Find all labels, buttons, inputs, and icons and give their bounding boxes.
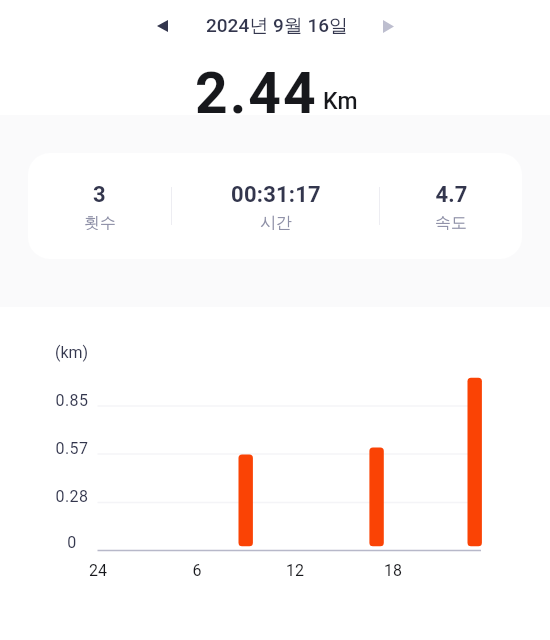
staticText: 횟수 (84, 213, 116, 233)
staticText: 24 (73, 561, 123, 580)
button[interactable]: Next day (369, 7, 407, 45)
staticText: 18 (368, 561, 418, 580)
staticText: 0.28 (22, 487, 122, 506)
staticText: 3 (93, 182, 106, 208)
button[interactable]: 00:31:17 (172, 153, 379, 259)
staticText: 0 (22, 533, 122, 552)
button[interactable]: 4.7 (380, 153, 522, 259)
staticText: 0.85 (22, 391, 122, 410)
button[interactable]: Previous day (143, 7, 181, 45)
staticText: 4.7 (435, 182, 468, 208)
staticText: 시간 (260, 213, 292, 233)
staticText: 2.44 (195, 60, 318, 127)
button[interactable]: 3 (28, 153, 522, 259)
staticText: 12 (270, 561, 320, 580)
staticText: 6 (172, 561, 222, 580)
staticText: 속도 (435, 213, 467, 233)
staticText: (km) (55, 343, 89, 362)
staticText: 2024년 9월 16일 (206, 14, 349, 38)
staticText: 0.57 (22, 439, 122, 458)
staticText: 00:31:17 (231, 182, 321, 208)
button[interactable]: 3 (28, 153, 171, 259)
staticText: Km (323, 88, 358, 115)
